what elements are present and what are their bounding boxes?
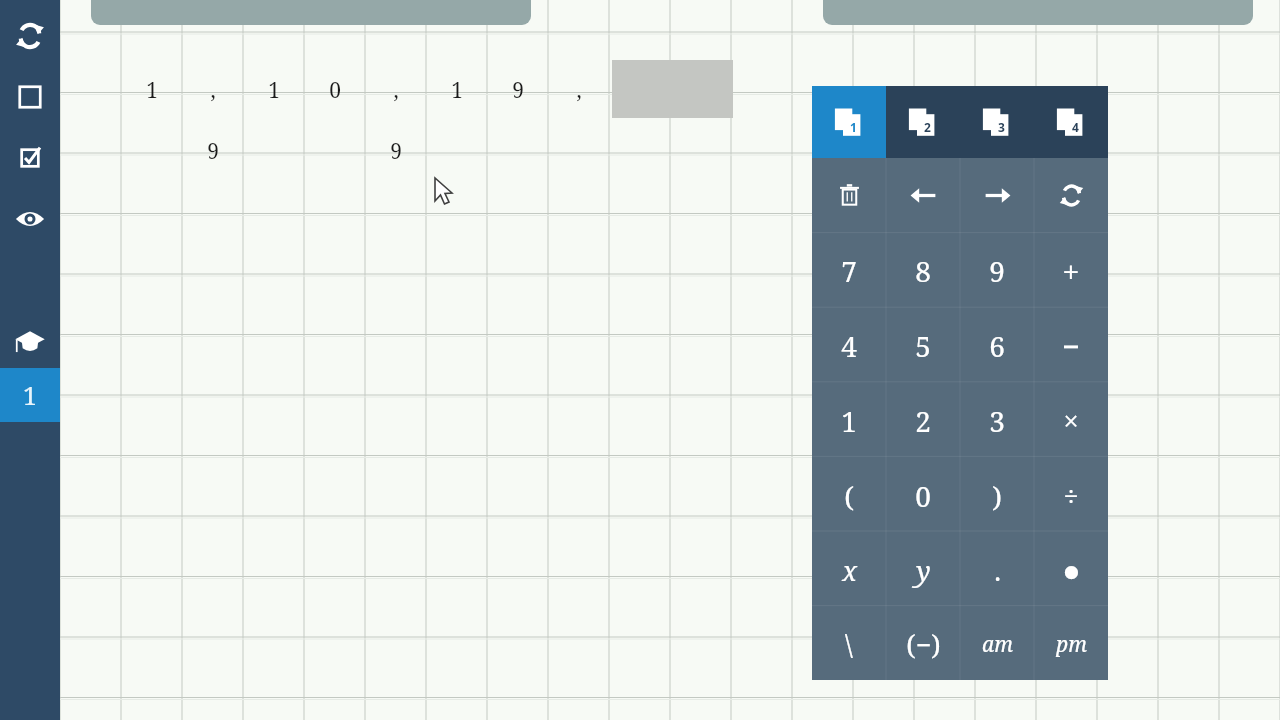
staticText: 1	[451, 76, 463, 105]
staticText: 9	[512, 76, 524, 105]
button[interactable]: Page 1	[812, 86, 886, 158]
button[interactable]: pm	[1034, 608, 1108, 680]
button[interactable]: 0	[886, 458, 960, 533]
button[interactable]: −	[1034, 308, 1108, 383]
button[interactable]: 1	[121, 60, 182, 121]
button[interactable]: ,	[182, 60, 243, 121]
staticText: 1	[841, 402, 857, 440]
staticText: 1	[23, 378, 37, 412]
staticText: 3	[998, 119, 1005, 135]
staticText: 6	[989, 327, 1005, 365]
button[interactable]: 4	[812, 308, 886, 383]
staticText: y	[916, 552, 931, 589]
button[interactable]: 8	[886, 233, 960, 308]
button[interactable]: 5	[886, 308, 960, 383]
button[interactable]: View	[0, 193, 60, 245]
staticText: 0	[329, 76, 341, 105]
button[interactable]: 1	[812, 383, 886, 458]
button[interactable]: \	[812, 608, 886, 680]
staticText: (−)	[906, 626, 941, 663]
staticText: 9	[207, 137, 219, 166]
button[interactable]	[91, 0, 531, 25]
staticText: 5	[915, 327, 931, 365]
button[interactable]: ×	[1034, 383, 1108, 458]
staticText: 9	[989, 252, 1005, 290]
button[interactable]: 2	[886, 383, 960, 458]
staticText: ,	[393, 76, 399, 105]
staticText: 8	[915, 252, 931, 290]
staticText: −	[1062, 325, 1080, 367]
button[interactable]: (−)	[886, 608, 960, 680]
button[interactable]: 1	[426, 60, 487, 121]
button[interactable]: ÷	[1034, 458, 1108, 533]
button[interactable]: 9	[182, 121, 243, 182]
staticText: ÷	[1063, 477, 1079, 514]
button[interactable]: Learn	[0, 314, 60, 366]
button[interactable]: x	[812, 533, 886, 608]
staticText: 0	[915, 477, 931, 515]
button[interactable]: +	[1034, 233, 1108, 308]
staticText: 2	[924, 119, 931, 135]
button[interactable]: Check	[0, 132, 60, 184]
button[interactable]: 1	[243, 60, 304, 121]
staticText: +	[1062, 250, 1080, 292]
staticText: 1	[268, 76, 280, 105]
button[interactable]: y	[886, 533, 960, 608]
button[interactable]: 9	[960, 233, 1034, 308]
button[interactable]: Page 2	[886, 86, 960, 158]
button[interactable]	[823, 0, 1253, 25]
staticText: .	[994, 552, 1001, 589]
button[interactable]: Right	[960, 158, 1034, 233]
button[interactable]: Left	[886, 158, 960, 233]
staticText: (	[844, 477, 854, 515]
staticText: ,	[576, 76, 582, 105]
staticText: 3	[989, 402, 1005, 440]
button[interactable]: 1	[0, 368, 60, 422]
staticText: \	[845, 626, 853, 663]
staticText: ●	[1064, 561, 1079, 581]
staticText: 7	[841, 252, 857, 290]
staticText: 1	[850, 119, 857, 135]
staticText: am	[982, 630, 1013, 659]
staticText: 2	[915, 402, 931, 440]
staticText: 4	[841, 327, 857, 365]
button[interactable]: .	[960, 533, 1034, 608]
button[interactable]: Sync	[0, 10, 60, 62]
button[interactable]: 9	[487, 60, 548, 121]
button[interactable]: (	[812, 458, 886, 533]
button[interactable]: Select	[0, 71, 60, 123]
staticText: pm	[1056, 630, 1087, 659]
staticText: ,	[210, 76, 216, 105]
button[interactable]: )	[960, 458, 1034, 533]
button[interactable]: 3	[960, 383, 1034, 458]
button[interactable]: 6	[960, 308, 1034, 383]
button[interactable]: Page 4	[1034, 86, 1108, 158]
staticText: 9	[390, 137, 402, 166]
staticText: 1	[146, 76, 158, 105]
staticText: x	[842, 552, 857, 589]
button[interactable]: ,	[365, 60, 426, 121]
staticText: )	[992, 477, 1002, 515]
staticText: ×	[1063, 402, 1079, 439]
button[interactable]: 9	[365, 121, 426, 182]
button[interactable]: am	[960, 608, 1034, 680]
button[interactable]: 0	[304, 60, 365, 121]
button[interactable]: ●	[1034, 533, 1108, 608]
button[interactable]: Page 3	[960, 86, 1034, 158]
staticText: 4	[1072, 119, 1079, 135]
button[interactable]: Clear	[812, 158, 886, 233]
button[interactable]: 7	[812, 233, 886, 308]
button[interactable]: ,	[548, 60, 609, 121]
button[interactable]: Refresh	[1034, 158, 1108, 233]
